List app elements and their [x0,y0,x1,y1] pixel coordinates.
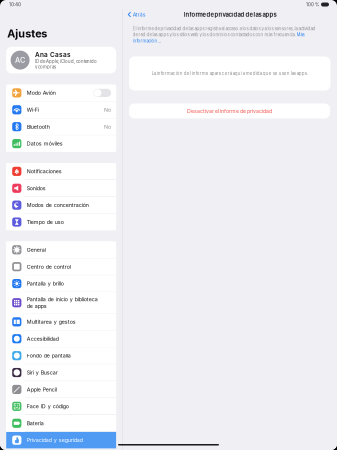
button[interactable]: Tiempo de uso [6,214,116,230]
staticText: Centro de control [27,263,71,270]
staticText: Wi-Fi [27,107,39,113]
button[interactable]: información… [133,38,162,43]
staticText: 100 % [306,2,319,7]
staticText: No [104,107,111,113]
button[interactable]: Desactivar el informe de privacidad [123,103,337,118]
staticText: Tiempo de uso [27,219,64,225]
button[interactable]: Atrás [125,9,148,20]
staticText: Ana Casas [35,51,71,58]
button[interactable]: Notificaciones [6,163,116,179]
staticText: información… [133,38,162,43]
button[interactable]: Face ID y código [6,398,116,414]
button[interactable]: Bluetooth [6,118,116,135]
staticText: Multitarea y gestos [27,319,76,325]
button[interactable]: Modos de concentración [6,197,116,213]
staticText: ID de Apple, iCloud, contenido [35,59,97,64]
staticText: El informe de privacidad de las apps reg… [133,26,316,31]
staticText: Atrás [133,11,146,18]
button[interactable]: General [6,242,116,258]
staticText: Notificaciones [27,168,62,175]
button[interactable]: Centro de control [6,258,116,275]
button[interactable]: AC [6,47,116,73]
button[interactable]: Datos móviles [6,135,116,152]
staticText: General [27,247,46,253]
button[interactable]: Sonidos [6,180,116,196]
staticText: Apple Pencil [27,386,57,393]
staticText: Bluetooth [27,123,50,130]
button[interactable]: Siri y Buscar [6,364,116,381]
button[interactable]: Modo Avión [6,85,116,101]
button[interactable]: Multitarea y gestos [6,314,116,330]
button[interactable]: Wi-Fi [6,102,116,118]
staticText: Pantalla de inicio y biblioteca [27,296,98,303]
staticText: Modo Avión [27,90,56,96]
staticText: Fondo de pantalla [27,352,71,359]
staticText: 10:40 [9,2,21,7]
staticText: Datos móviles [27,140,63,147]
button[interactable]: Pantalla de inicio y biblioteca [6,292,116,313]
button[interactable]: Fondo de pantalla [6,347,116,364]
button[interactable]: Apple Pencil [6,381,116,398]
staticText: de apps [27,303,47,309]
button[interactable]: Privacidad y seguridad [6,432,116,448]
staticText: AC [15,56,25,64]
staticText: Desactivar el informe de privacidad [187,108,272,114]
staticText: No [104,123,111,130]
button[interactable]: Batería [6,415,116,431]
staticText: Ajustes [7,27,47,40]
staticText: Modos de concentración [27,202,89,208]
staticText: La información del informe aparecerá aqu… [152,71,308,76]
button[interactable]: Más [297,32,305,37]
button[interactable]: Pantalla y brillo [6,275,116,292]
staticText: Informe de privacidad de las apps [184,11,277,18]
staticText: Face ID y código [27,403,69,410]
staticText: y compras [35,64,56,69]
button[interactable]: Accesibilidad [6,330,116,347]
staticText: Sonidos [27,185,46,191]
staticText: Pantalla y brillo [27,280,64,287]
staticText: de red de las apps y los sitios web y lo… [133,32,297,37]
staticText: Batería [27,420,44,426]
staticText: Más [297,32,305,37]
staticText: Accesibilidad [27,335,59,342]
staticText: Siri y Buscar [27,369,58,376]
staticText: Privacidad y seguridad [27,437,83,443]
